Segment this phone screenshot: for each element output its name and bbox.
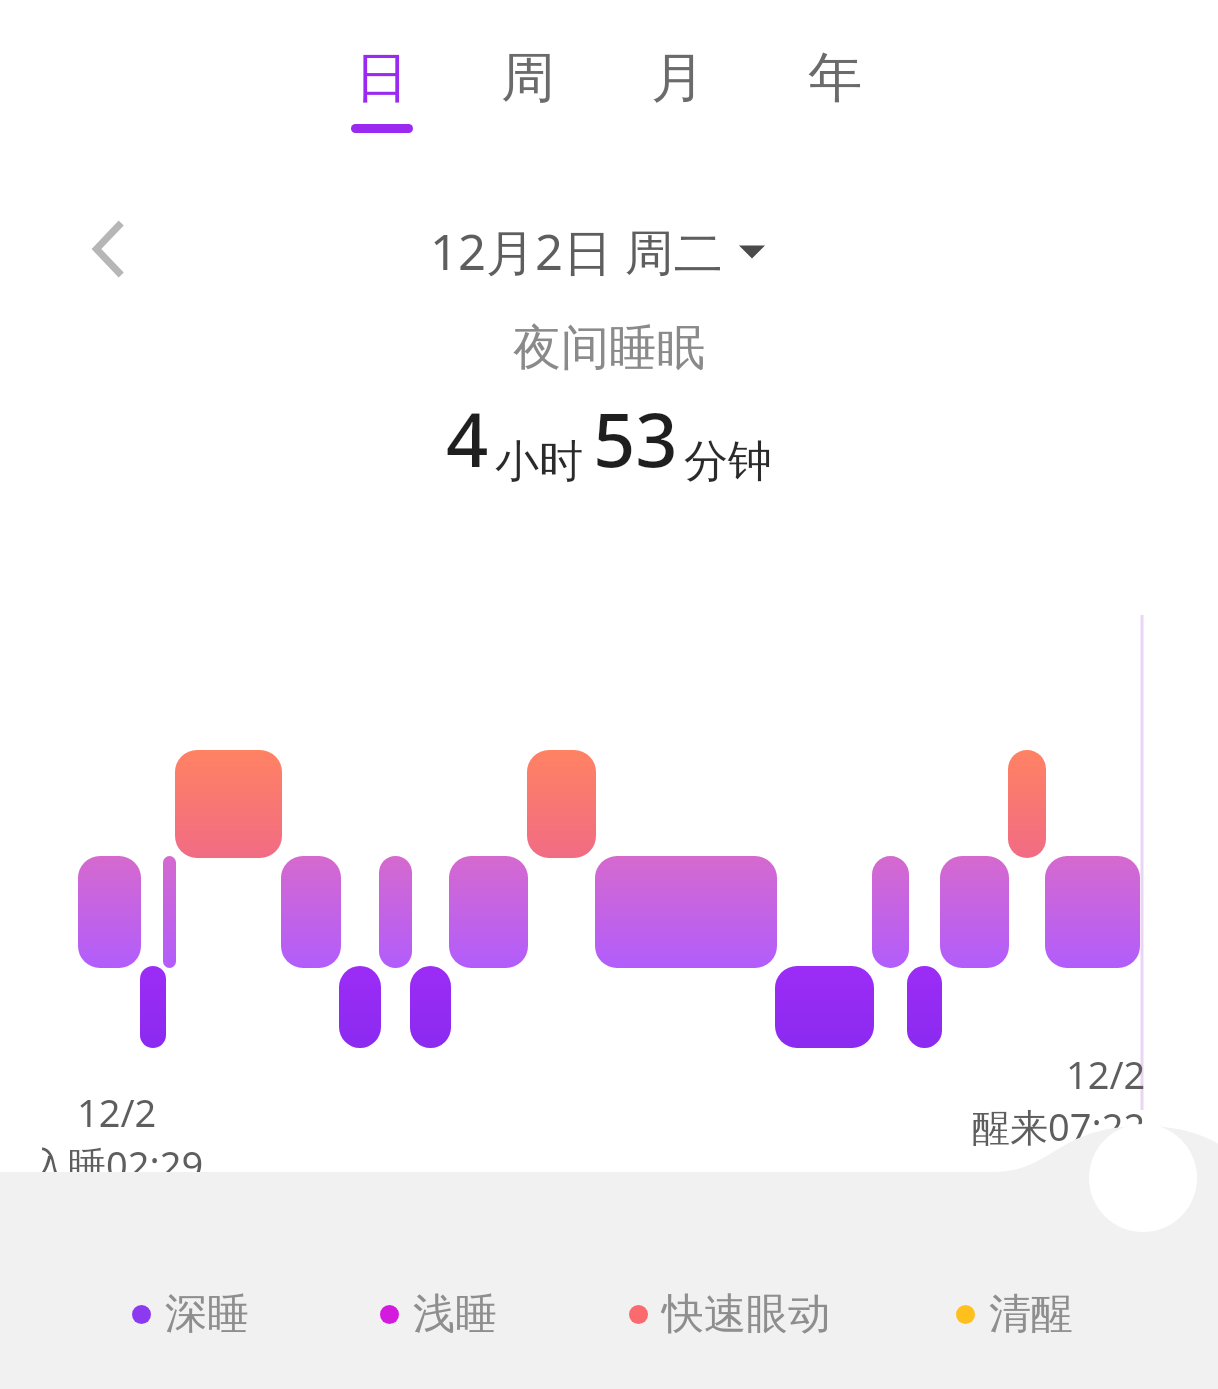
staticText: 4 bbox=[446, 388, 489, 489]
button[interactable]: 月 bbox=[620, 44, 736, 160]
staticText: 清醒 bbox=[989, 1288, 1073, 1341]
staticText: 月 bbox=[651, 44, 705, 112]
button[interactable]: 深睡 bbox=[132, 1286, 249, 1342]
button[interactable]: Back bbox=[62, 196, 158, 302]
button[interactable]: 12月2日 周二 bbox=[430, 212, 765, 290]
button[interactable]: 周 bbox=[470, 44, 586, 160]
staticText: 周 bbox=[501, 44, 555, 112]
button[interactable]: 清醒 bbox=[956, 1286, 1073, 1342]
staticText: 日 bbox=[355, 44, 409, 112]
staticText: 分钟 bbox=[684, 434, 772, 489]
button[interactable]: 浅睡 bbox=[380, 1286, 497, 1342]
button[interactable]: 日 bbox=[324, 44, 440, 160]
staticText: 快速眼动 bbox=[662, 1288, 830, 1341]
staticText: 醒来07:22 bbox=[972, 1100, 1146, 1152]
staticText: 12月2日 周二 bbox=[430, 218, 723, 285]
staticText: 12/2 bbox=[77, 1086, 157, 1138]
staticText: 入睡02:29 bbox=[30, 1138, 204, 1190]
staticText: 浅睡 bbox=[413, 1288, 497, 1341]
button[interactable]: 快速眼动 bbox=[629, 1286, 830, 1342]
staticText: 12/2 bbox=[1066, 1048, 1146, 1100]
staticText: 53 bbox=[593, 388, 678, 489]
staticText: 年 bbox=[808, 44, 862, 112]
button[interactable]: 年 bbox=[777, 44, 893, 160]
staticText: 夜间睡眠 bbox=[513, 318, 705, 378]
staticText: 深睡 bbox=[165, 1288, 249, 1341]
staticText: 小时 bbox=[495, 434, 583, 489]
